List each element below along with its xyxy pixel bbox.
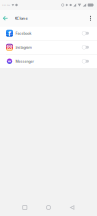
button[interactable]: More options bbox=[85, 10, 96, 26]
button[interactable]: f bbox=[0, 26, 97, 40]
staticText: Facebook bbox=[15, 31, 31, 36]
button[interactable]: Home bbox=[37, 194, 60, 216]
staticText: Messenger bbox=[15, 59, 33, 64]
staticText: f bbox=[8, 29, 11, 38]
staticText: XClone bbox=[14, 15, 27, 21]
button[interactable]: Back bbox=[0, 10, 11, 26]
button[interactable]: Instagram bbox=[0, 40, 97, 54]
staticText: Instagram bbox=[15, 45, 31, 50]
button[interactable]: Messenger bbox=[0, 54, 97, 68]
staticText: 3:01 PM bbox=[2, 3, 10, 6]
button[interactable]: Back bbox=[60, 194, 84, 216]
button[interactable]: Recent apps bbox=[13, 194, 37, 216]
